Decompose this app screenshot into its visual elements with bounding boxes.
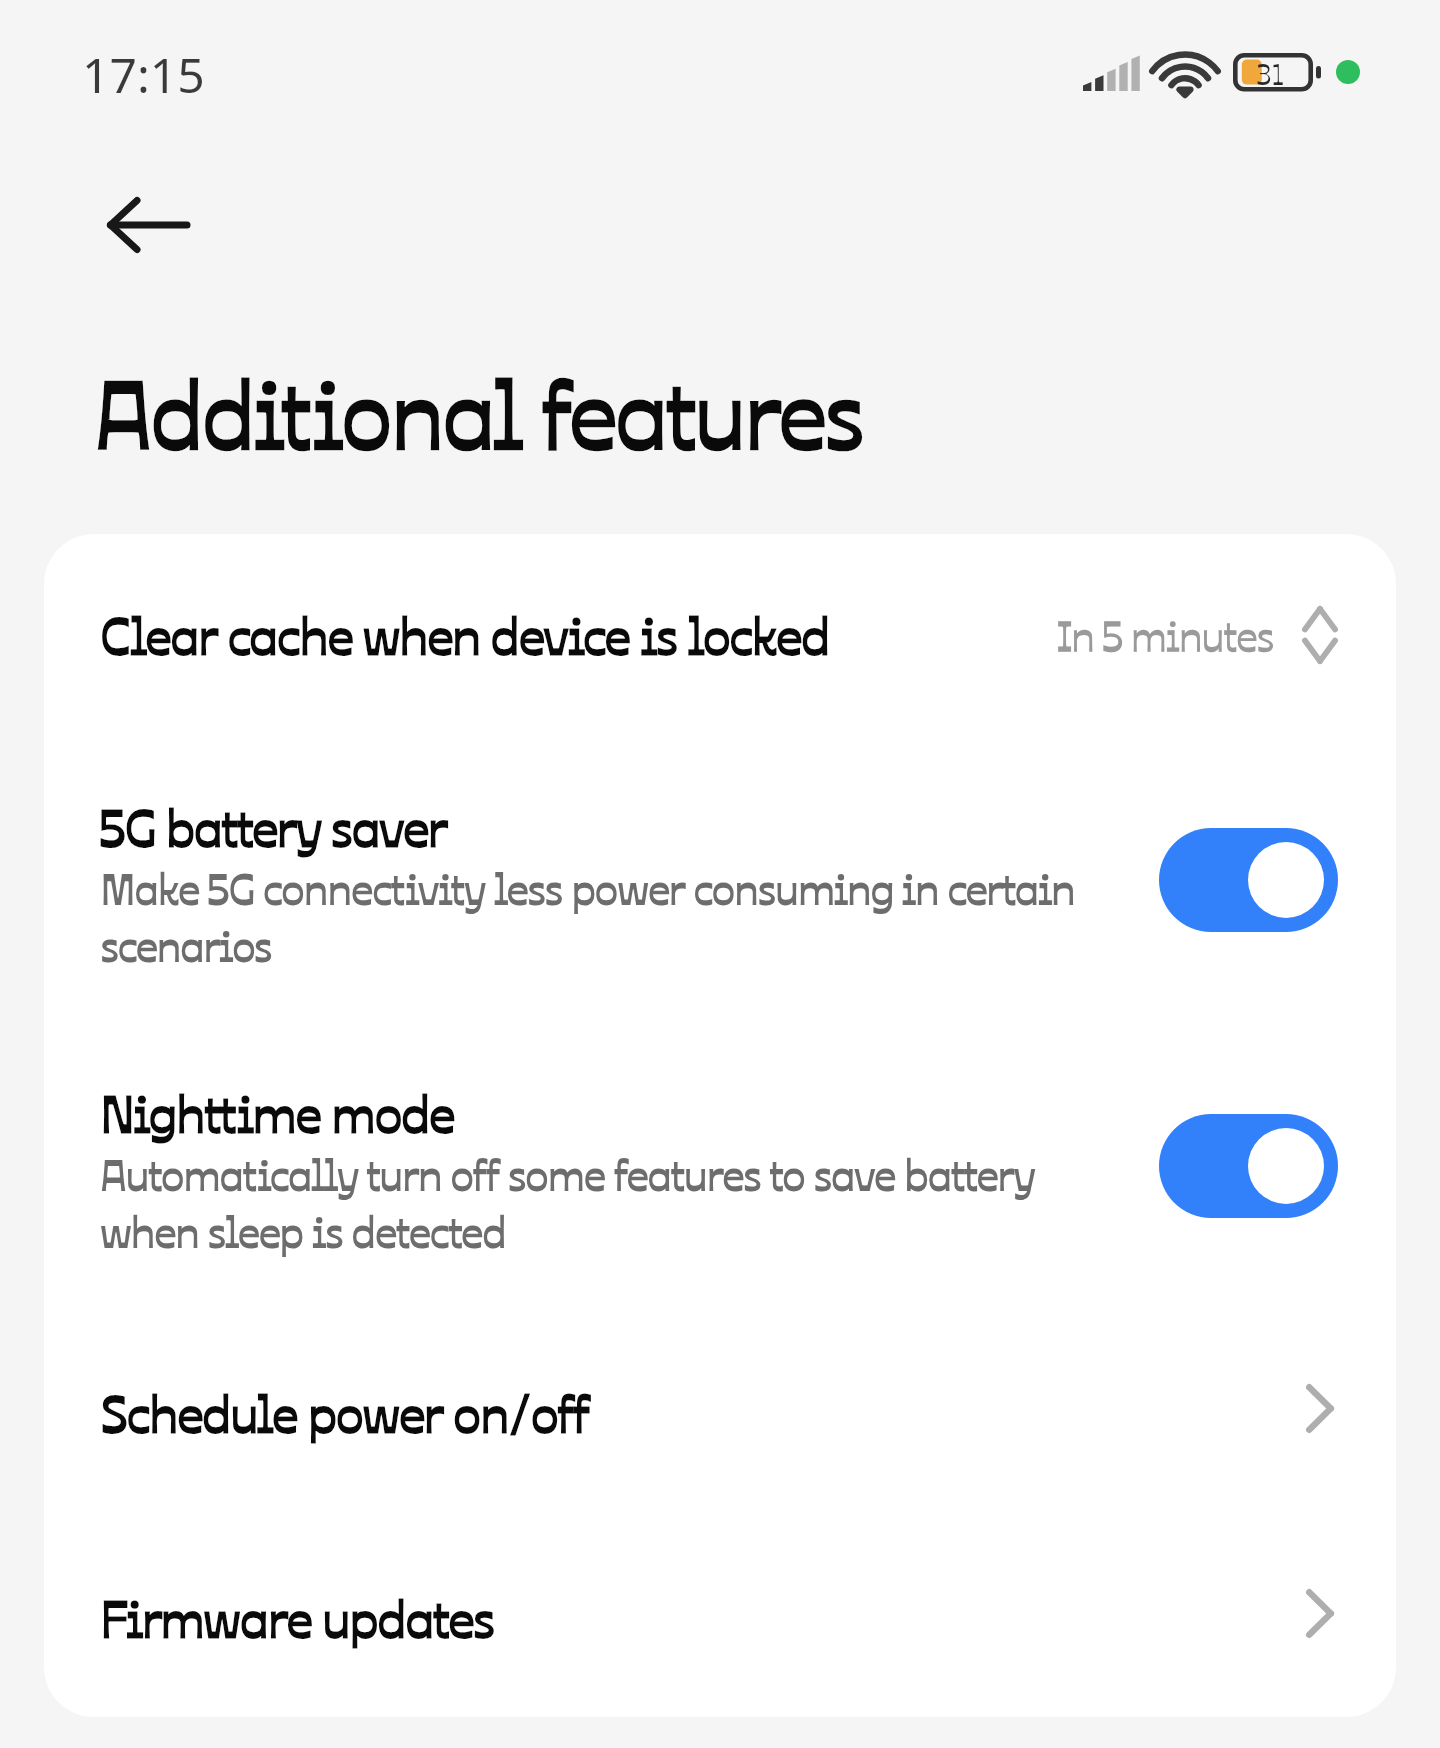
staticText: Schedule power on/off — [101, 1375, 590, 1445]
staticText: Nighttime mode — [101, 1075, 455, 1145]
button[interactable]: Change clear cache delay — [1302, 606, 1338, 664]
staticText: In 5 minutes — [1057, 605, 1275, 663]
staticText: Additional features — [96, 344, 864, 473]
staticText: Make 5G connectivity less power consumin… — [101, 857, 1111, 973]
staticText: Additional features — [96, 344, 864, 473]
button[interactable]: 5G battery saver, on — [1159, 828, 1338, 932]
staticText: Clear cache when device is locked — [101, 597, 830, 667]
button[interactable]: Nighttime mode — [44, 1074, 1396, 1360]
staticText: 5G battery saver — [101, 789, 448, 859]
button[interactable]: Firmware updates — [44, 1525, 1396, 1717]
button[interactable]: 5G battery saver — [44, 788, 1396, 1074]
staticText: Make 5G connectivity less power consumin… — [101, 857, 1111, 973]
staticText: Nighttime mode — [101, 1075, 455, 1145]
staticText: Firmware updates — [101, 1580, 495, 1650]
staticText: Clear cache when device is locked — [101, 597, 830, 667]
staticText: 17:15 — [82, 42, 205, 107]
button[interactable]: Nighttime mode, on — [1159, 1114, 1338, 1218]
staticText: In 5 minutes — [1057, 605, 1275, 663]
staticText: 5G battery saver — [101, 789, 448, 859]
staticText: Schedule power on/off — [101, 1375, 590, 1445]
button[interactable]: Clear cache when device is locked — [44, 534, 1396, 788]
staticText: Automatically turn off some features to … — [101, 1143, 1111, 1259]
staticText: 31 — [1256, 51, 1285, 90]
staticText: Automatically turn off some features to … — [101, 1143, 1111, 1259]
staticText: Firmware updates — [101, 1580, 495, 1650]
button[interactable]: Schedule power on/off — [44, 1320, 1396, 1527]
button[interactable]: Back — [79, 170, 215, 280]
